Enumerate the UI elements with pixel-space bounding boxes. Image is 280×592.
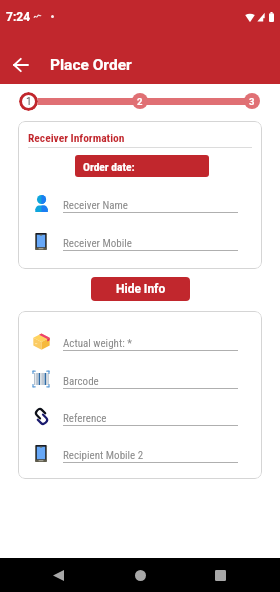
- button[interactable]: Recent apps: [200, 558, 241, 592]
- button[interactable]: 3: [244, 93, 260, 109]
- button[interactable]: Home: [120, 558, 160, 592]
- staticText: 2: [137, 96, 143, 107]
- staticText: 1: [26, 96, 32, 108]
- staticText: Recipient Mobile 2: [63, 449, 144, 462]
- staticText: Receiver Information: [28, 131, 125, 144]
- staticText: 7:24: [6, 10, 31, 24]
- staticText: Receiver Name: [63, 199, 128, 212]
- button[interactable]: Order date:: [75, 155, 209, 177]
- button[interactable]: Hide Info: [91, 277, 190, 301]
- staticText: Place Order: [50, 56, 132, 74]
- button[interactable]: Navigate up: [4, 49, 36, 81]
- staticText: Actual weight: *: [63, 337, 132, 350]
- button[interactable]: Back: [38, 558, 79, 592]
- staticText: 3: [249, 96, 255, 107]
- staticText: Hide Info: [116, 282, 166, 296]
- staticText: Barcode: [63, 375, 99, 388]
- staticText: Order date:: [83, 160, 135, 173]
- button[interactable]: 2: [132, 93, 148, 109]
- staticText: Reference: [63, 412, 107, 425]
- button[interactable]: 1: [19, 92, 38, 111]
- staticText: Receiver Mobile: [63, 237, 132, 250]
